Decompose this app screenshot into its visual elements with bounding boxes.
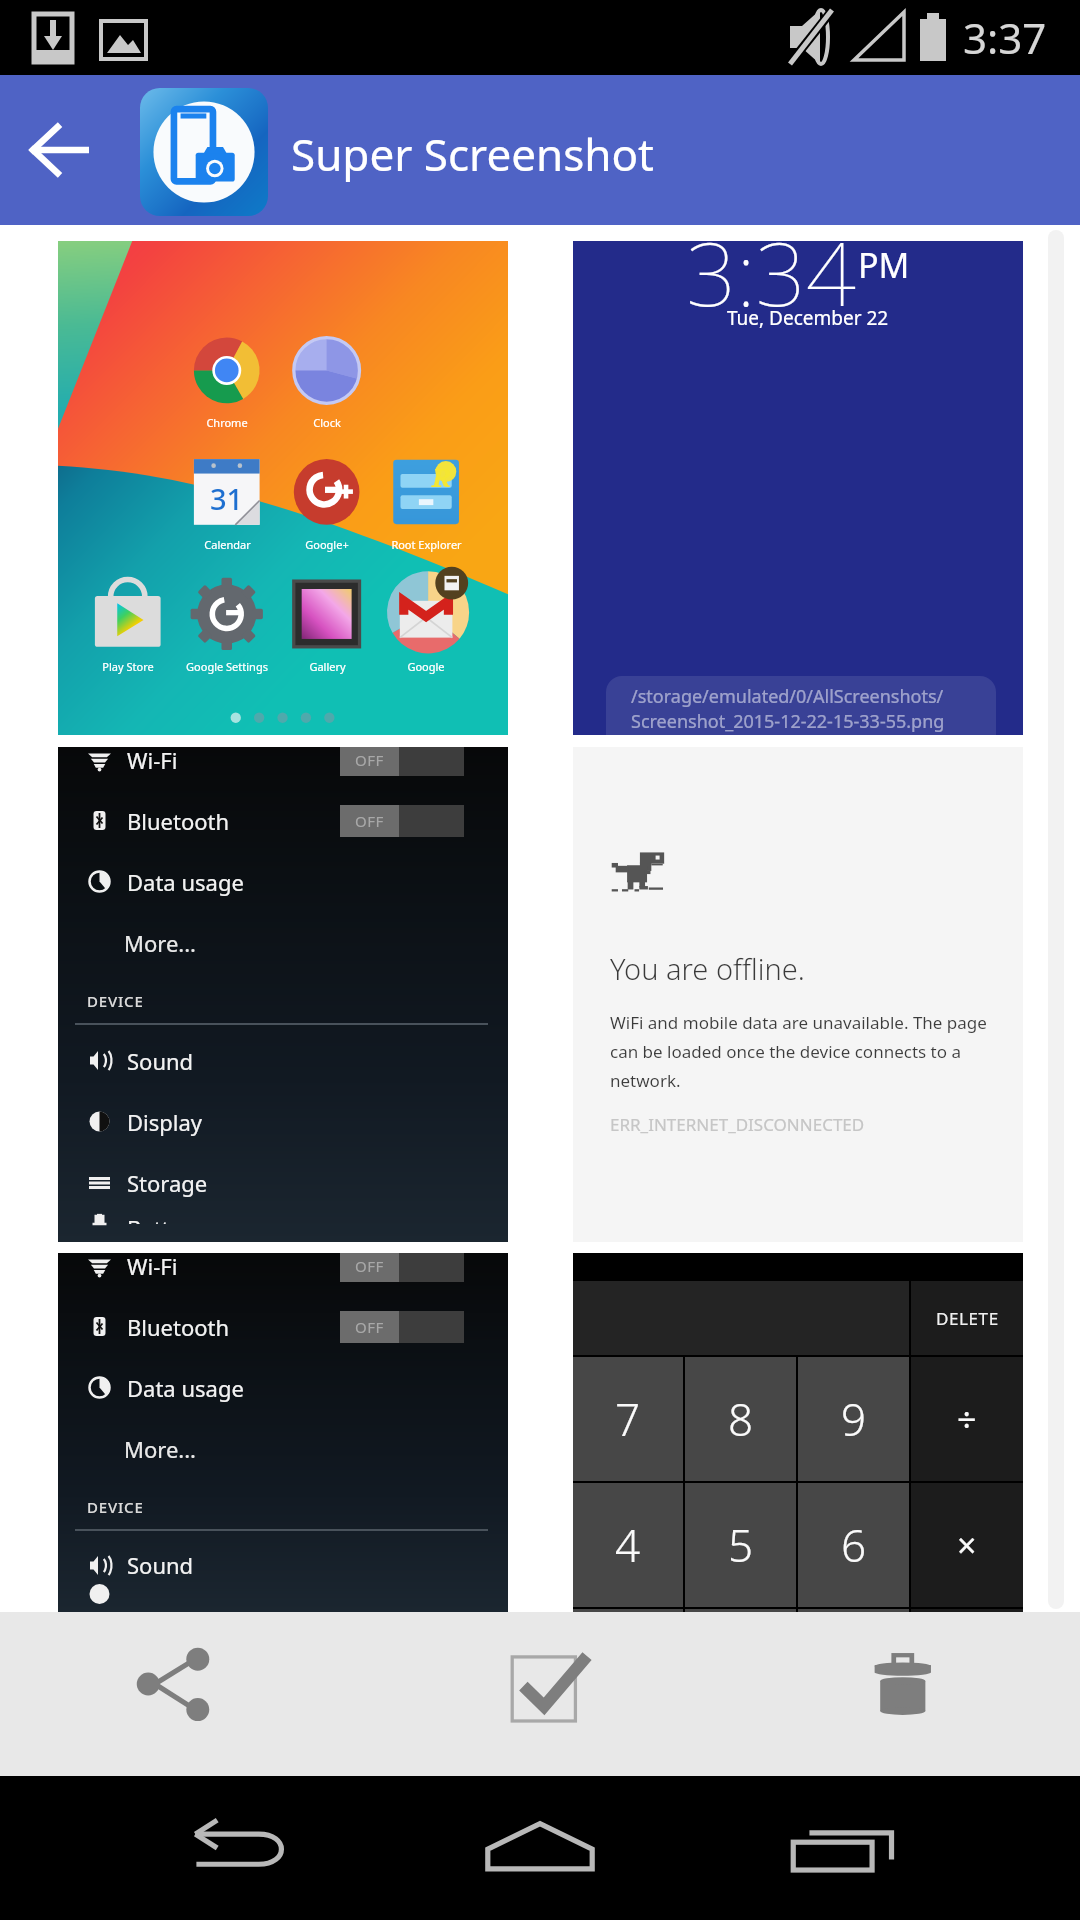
button[interactable]: Screenshot of home screen — [58, 241, 508, 735]
staticText: You are offline. — [610, 949, 805, 988]
staticText: 9 — [841, 1389, 867, 1449]
staticText: Google — [407, 659, 445, 674]
staticText: Data usage — [127, 867, 244, 897]
staticText: OFF — [355, 750, 384, 770]
staticText: Play Store — [102, 659, 154, 674]
button[interactable]: Screenshot of lock screen — [573, 241, 1023, 735]
staticText: More... — [124, 1434, 197, 1464]
staticText: 5 — [728, 1515, 754, 1575]
staticText: OFF — [355, 1256, 384, 1276]
staticText: PM — [858, 242, 910, 288]
staticText: ERR_INTERNET_DISCONNECTED — [610, 1113, 865, 1136]
staticText: Chrome — [206, 415, 248, 430]
staticText: 6 — [841, 1515, 867, 1575]
staticText: More... — [124, 928, 197, 958]
staticText: /storage/emulated/0/AllScreenshots/ — [631, 684, 944, 709]
button[interactable]: Screenshot of settings 2 — [58, 1253, 508, 1612]
staticText: Sound — [127, 1046, 194, 1076]
button[interactable]: Select all — [478, 1624, 598, 1744]
staticText: DEVICE — [87, 991, 144, 1011]
staticText: OFF — [355, 811, 384, 831]
button[interactable]: Share — [113, 1624, 233, 1744]
button[interactable]: Back — [178, 1798, 298, 1898]
button[interactable]: Recent apps — [784, 1798, 904, 1898]
staticText: DELETE — [936, 1307, 999, 1330]
staticText: 31 — [210, 479, 244, 518]
staticText: OFF — [355, 1317, 384, 1337]
button[interactable]: Home — [480, 1798, 600, 1898]
staticText: 7 — [615, 1389, 641, 1449]
staticText: × — [957, 1522, 977, 1568]
button[interactable]: Screenshot of offline page — [573, 747, 1023, 1242]
staticText: ÷ — [957, 1396, 977, 1442]
staticText: Wi-Fi — [127, 1253, 178, 1281]
staticText: WiFi and mobile data are unavailable. Th… — [610, 1011, 1000, 1092]
staticText: Calendar — [204, 537, 251, 552]
button[interactable]: Screenshot of calculator — [573, 1253, 1023, 1612]
staticText: Clock — [313, 415, 341, 430]
button[interactable]: Delete — [843, 1621, 963, 1741]
staticText: Battery — [127, 1213, 203, 1224]
button[interactable]: Screenshot of settings — [58, 747, 508, 1242]
staticText: 4 — [615, 1515, 641, 1575]
staticText: Bluetooth — [127, 1312, 230, 1342]
staticText: Bluetooth — [127, 806, 230, 836]
staticText: Google Settings — [186, 659, 268, 674]
staticText: Wi-Fi — [127, 747, 178, 775]
staticText: Screenshot_2015-12-22-15-33-55.png — [631, 709, 945, 734]
staticText: Google+ — [305, 537, 349, 552]
staticText: Tue, December 22 — [727, 305, 889, 331]
staticText: 8 — [728, 1389, 754, 1449]
staticText: R — [432, 459, 451, 494]
staticText: DEVICE — [87, 1497, 144, 1517]
button[interactable]: Back — [0, 90, 120, 210]
staticText: Storage — [127, 1168, 208, 1198]
staticText: Root Explorer — [391, 537, 462, 552]
staticText: 3:34 — [686, 241, 856, 332]
staticText: Super Screenshot — [291, 124, 654, 184]
staticText: Sound — [127, 1550, 194, 1580]
staticText: 3:37 — [963, 9, 1047, 66]
staticText: Display — [127, 1107, 203, 1137]
staticText: Data usage — [127, 1373, 244, 1403]
staticText: Gallery — [309, 659, 346, 674]
